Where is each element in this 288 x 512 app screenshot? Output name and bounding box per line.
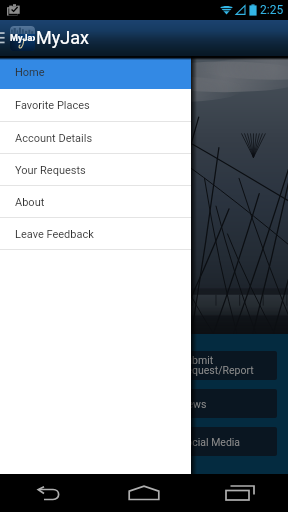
staticText: Account Details	[15, 132, 93, 145]
button[interactable]: Home	[0, 56, 191, 89]
button[interactable]: Back	[0, 474, 96, 512]
button[interactable]: Your Requests	[0, 154, 191, 186]
staticText: Favorite Places	[15, 99, 90, 112]
button[interactable]: Favorite Places	[0, 89, 191, 122]
staticText: MyJax	[10, 33, 35, 44]
button[interactable]: Open navigation drawer	[0, 20, 8, 56]
button[interactable]: Recent apps	[192, 474, 288, 512]
button[interactable]: Submit Request/Report	[172, 351, 277, 380]
button[interactable]: Leave Feedback	[0, 218, 191, 250]
staticText: Social Media	[180, 436, 241, 448]
button[interactable]: Social Media	[172, 427, 277, 456]
staticText: Submit Request/Report	[180, 354, 254, 377]
staticText: Leave Feedback	[15, 228, 94, 241]
staticText: 2:25	[260, 3, 284, 17]
button[interactable]: Home	[96, 474, 192, 512]
staticText: Your Requests	[15, 164, 86, 177]
staticText: News	[180, 398, 207, 410]
button[interactable]: About	[0, 186, 191, 218]
staticText: About	[15, 196, 45, 209]
button[interactable]: News	[172, 389, 277, 418]
staticText: Home	[15, 66, 45, 79]
button[interactable]: Account Details	[0, 122, 191, 154]
staticText: MyJax	[36, 27, 89, 48]
